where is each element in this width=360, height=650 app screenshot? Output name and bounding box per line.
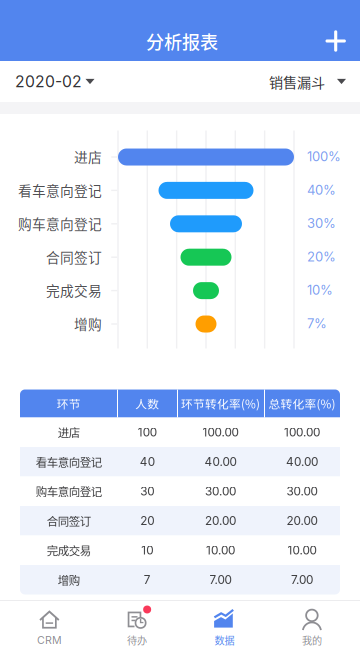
- staticText: 30.00: [205, 484, 236, 498]
- staticText: 20.00: [286, 514, 317, 528]
- button[interactable]: 销售漏斗: [255, 61, 360, 102]
- staticText: 分析报表: [146, 28, 218, 54]
- staticText: 合同签订: [46, 247, 102, 267]
- staticText: 增购: [74, 314, 102, 333]
- button[interactable]: 数据: [181, 601, 268, 650]
- staticText: 进店: [74, 147, 102, 166]
- staticText: 7%: [307, 316, 327, 331]
- staticText: 100%: [307, 149, 341, 164]
- staticText: 看车意向登记: [18, 180, 102, 200]
- staticText: 2020-02: [15, 72, 82, 91]
- button[interactable]: 待办: [93, 601, 181, 650]
- staticText: 40: [140, 455, 155, 469]
- staticText: 环节转化率(%): [181, 395, 260, 412]
- staticText: CRM: [37, 633, 62, 646]
- staticText: 合同签订: [47, 512, 91, 529]
- staticText: 7.00: [291, 573, 313, 587]
- staticText: 完成交易: [46, 280, 102, 300]
- staticText: 40%: [307, 182, 336, 198]
- button[interactable]: Add: [319, 24, 353, 58]
- staticText: 20: [140, 514, 154, 528]
- staticText: 进店: [58, 424, 80, 440]
- staticText: 10.00: [287, 543, 316, 557]
- staticText: 我的: [302, 633, 322, 647]
- staticText: 100: [138, 425, 157, 439]
- staticText: 7.00: [209, 573, 231, 587]
- staticText: 7: [144, 573, 151, 587]
- staticText: 人数: [135, 395, 159, 412]
- staticText: 20%: [307, 249, 336, 265]
- staticText: 40.00: [204, 455, 236, 469]
- staticText: 30%: [307, 215, 336, 231]
- staticText: 购车意向登记: [18, 213, 102, 233]
- staticText: 购车意向登记: [36, 483, 102, 499]
- staticText: 完成交易: [47, 542, 91, 558]
- staticText: 30.00: [286, 484, 317, 498]
- staticText: 30: [140, 484, 154, 498]
- button[interactable]: 2020-02: [0, 61, 108, 102]
- staticText: 增购: [58, 571, 80, 588]
- staticText: 环节: [57, 395, 81, 412]
- staticText: 20.00: [205, 514, 236, 528]
- staticText: 40.00: [286, 455, 318, 469]
- staticText: 待办: [127, 633, 147, 647]
- staticText: 10: [141, 543, 153, 557]
- staticText: 100.00: [284, 425, 320, 439]
- button[interactable]: 我的: [268, 601, 356, 650]
- button[interactable]: CRM: [6, 601, 93, 650]
- staticText: 数据: [214, 633, 234, 647]
- staticText: 10.00: [206, 543, 235, 557]
- staticText: 看车意向登记: [36, 453, 102, 470]
- staticText: 销售漏斗: [269, 71, 325, 92]
- staticText: 100.00: [202, 425, 238, 439]
- staticText: 总转化率(%): [268, 395, 335, 412]
- staticText: 10%: [307, 282, 333, 298]
